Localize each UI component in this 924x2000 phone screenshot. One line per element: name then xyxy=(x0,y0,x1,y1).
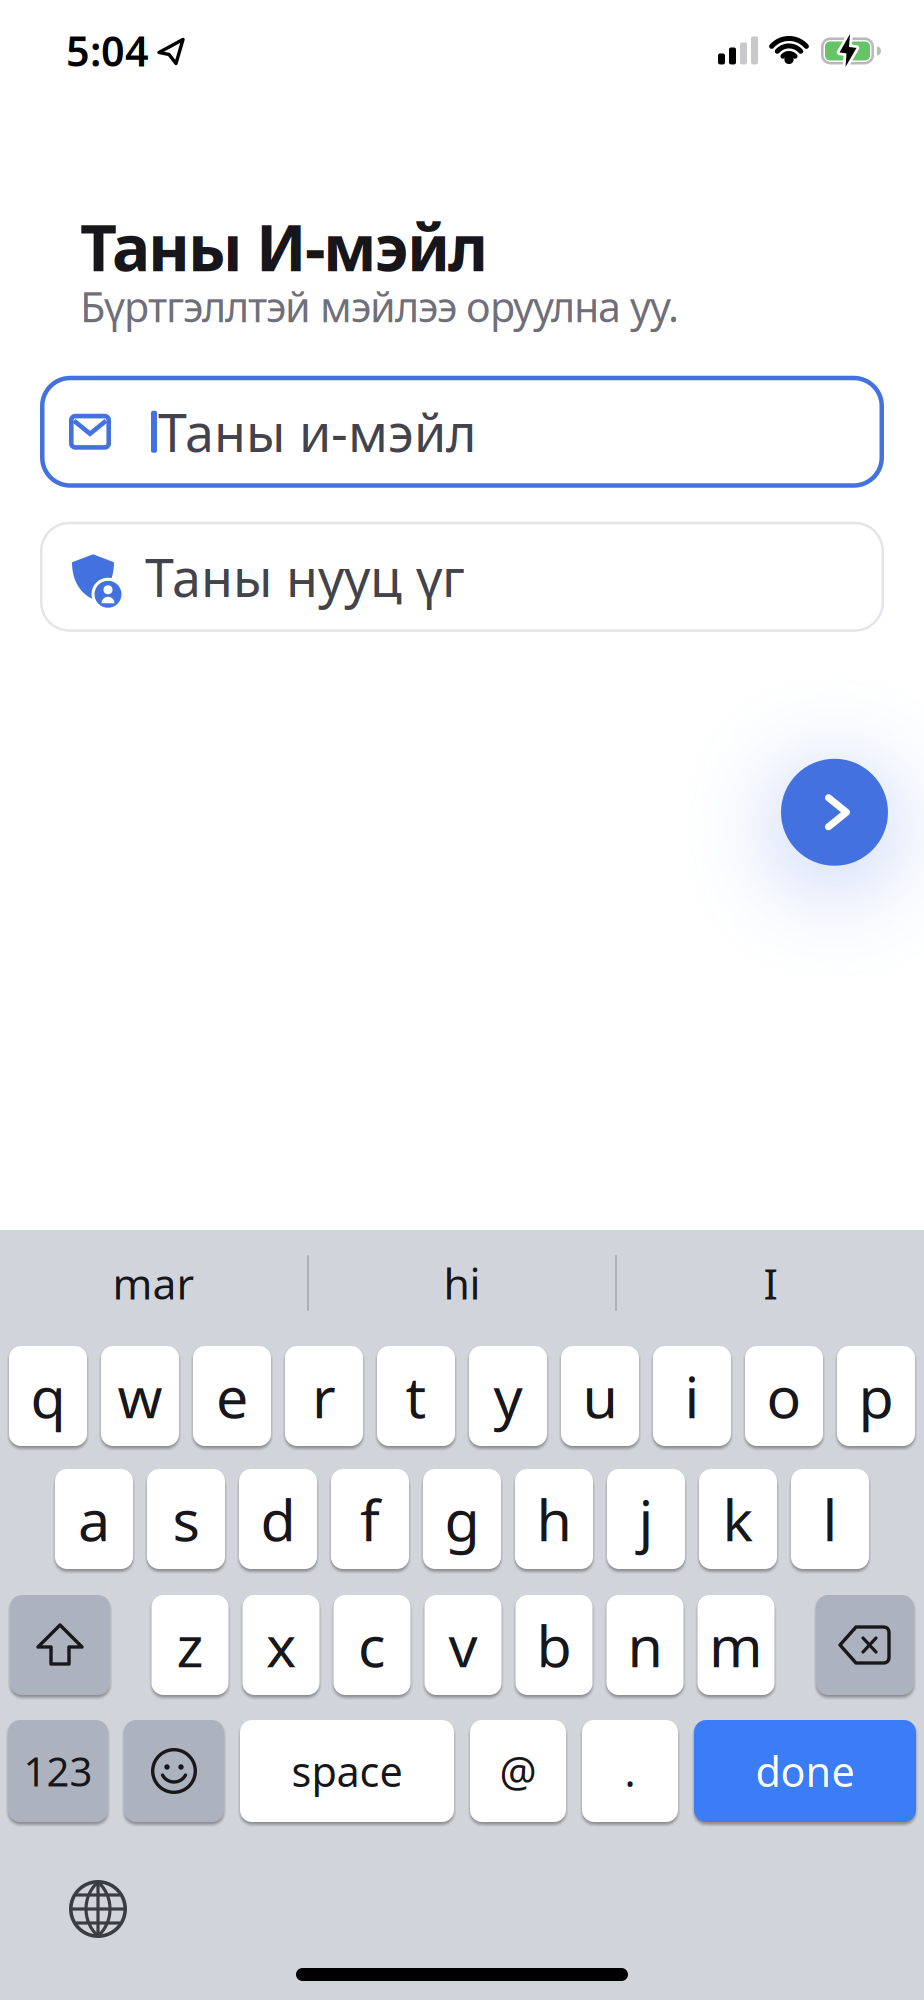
staticText: q xyxy=(30,1358,65,1434)
staticText: l xyxy=(822,1481,837,1557)
staticText: 5:04 xyxy=(66,23,149,78)
button[interactable]: d xyxy=(239,1469,317,1569)
staticText: j xyxy=(638,1481,653,1557)
staticText: Таны И-мэйл xyxy=(80,204,488,289)
button[interactable]: n xyxy=(606,1595,683,1695)
button[interactable]: j xyxy=(607,1469,685,1569)
button[interactable]: m xyxy=(697,1595,774,1695)
button[interactable]: b xyxy=(515,1595,592,1695)
button[interactable]: y xyxy=(469,1346,547,1446)
button[interactable]: @ xyxy=(470,1720,566,1822)
button[interactable]: u xyxy=(561,1346,639,1446)
button[interactable]: f xyxy=(331,1469,409,1569)
button[interactable]: l xyxy=(791,1469,869,1569)
button[interactable] xyxy=(124,1720,224,1822)
staticText: s xyxy=(172,1481,199,1557)
staticText: u xyxy=(582,1358,617,1434)
button[interactable]: a xyxy=(55,1469,133,1569)
staticText: r xyxy=(312,1358,336,1434)
button[interactable]: Таны нууц үг xyxy=(40,522,884,632)
staticText: z xyxy=(176,1607,203,1683)
staticText: a xyxy=(78,1481,110,1557)
button[interactable] xyxy=(69,1880,127,1938)
staticText: . xyxy=(624,1744,635,1798)
button[interactable]: done xyxy=(694,1720,916,1822)
button[interactable]: 123 xyxy=(8,1720,108,1822)
staticText: f xyxy=(360,1481,380,1557)
button[interactable]: h xyxy=(515,1469,593,1569)
button[interactable] xyxy=(816,1595,914,1695)
staticText: @ xyxy=(499,1744,536,1798)
staticText: n xyxy=(627,1607,662,1683)
button[interactable]: p xyxy=(837,1346,915,1446)
staticText: t xyxy=(405,1358,426,1434)
button[interactable]: z xyxy=(151,1595,228,1695)
button[interactable]: k xyxy=(699,1469,777,1569)
staticText: d xyxy=(260,1481,295,1557)
button[interactable]: w xyxy=(101,1346,179,1446)
staticText: m xyxy=(709,1607,763,1683)
button[interactable]: e xyxy=(193,1346,271,1446)
button[interactable]: v xyxy=(424,1595,501,1695)
staticText: 123 xyxy=(23,1744,92,1797)
button[interactable]: mar xyxy=(0,1230,307,1336)
button[interactable]: s xyxy=(147,1469,225,1569)
staticText: Бүртгэллтэй мэйлээ оруулна уу. xyxy=(80,279,679,334)
button[interactable]: q xyxy=(9,1346,87,1446)
button[interactable]: t xyxy=(377,1346,455,1446)
staticText: w xyxy=(117,1358,162,1434)
button[interactable]: i xyxy=(653,1346,731,1446)
staticText: Таны нууц үг xyxy=(145,542,465,611)
staticText: I xyxy=(763,1255,777,1311)
staticText: h xyxy=(536,1481,571,1557)
staticText: p xyxy=(858,1358,893,1434)
staticText: i xyxy=(684,1358,699,1434)
staticText: e xyxy=(216,1358,248,1434)
staticText: x xyxy=(266,1607,296,1683)
staticText: c xyxy=(358,1607,386,1683)
button[interactable]: Таны и-мэйл xyxy=(40,376,884,488)
staticText: Таны и-мэйл xyxy=(158,397,477,466)
button[interactable]: x xyxy=(242,1595,319,1695)
button[interactable]: o xyxy=(745,1346,823,1446)
button[interactable]: . xyxy=(582,1720,678,1822)
staticText: g xyxy=(444,1481,479,1557)
staticText: hi xyxy=(443,1255,480,1311)
button[interactable]: g xyxy=(423,1469,501,1569)
button[interactable]: c xyxy=(333,1595,410,1695)
staticText: b xyxy=(536,1607,571,1683)
button[interactable]: r xyxy=(285,1346,363,1446)
staticText: done xyxy=(755,1744,854,1798)
staticText: y xyxy=(493,1358,522,1434)
button[interactable]: space xyxy=(240,1720,454,1822)
button[interactable]: hi xyxy=(309,1230,615,1336)
button[interactable] xyxy=(781,759,888,866)
staticText: k xyxy=(722,1481,753,1557)
staticText: v xyxy=(448,1607,477,1683)
button[interactable] xyxy=(10,1595,110,1695)
button[interactable]: I xyxy=(617,1230,924,1336)
staticText: space xyxy=(291,1744,402,1798)
staticText: o xyxy=(766,1358,801,1434)
staticText: mar xyxy=(112,1255,194,1311)
